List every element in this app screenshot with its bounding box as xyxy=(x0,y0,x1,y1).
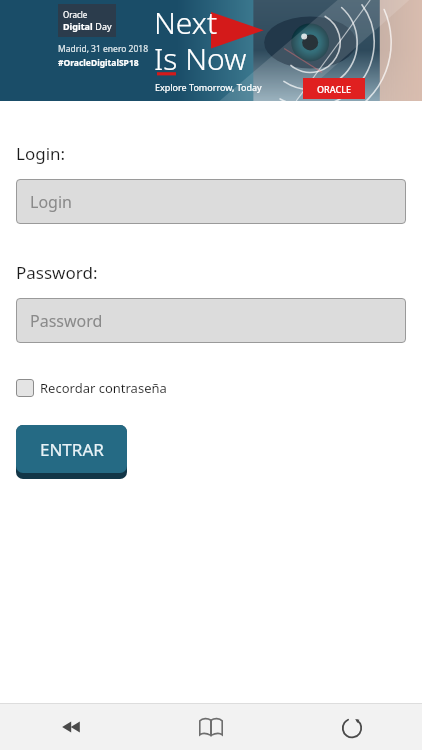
button[interactable]: Login xyxy=(16,179,406,224)
button[interactable]: Recordar contraseña xyxy=(16,379,167,397)
staticText: Next xyxy=(154,2,218,43)
staticText: Login: xyxy=(16,142,66,165)
staticText: ENTRAR xyxy=(40,438,104,461)
staticText: #OracleDigitalSP18 xyxy=(58,57,139,69)
staticText: Password: xyxy=(16,261,98,284)
staticText: ORACLE xyxy=(317,83,351,95)
button[interactable]: Back xyxy=(0,704,141,750)
staticText: Is Now xyxy=(154,38,247,79)
staticText: Password xyxy=(30,310,103,332)
staticText: Explore Tomorrow, Today xyxy=(155,81,262,93)
button[interactable]: Password xyxy=(16,298,406,343)
staticText: Recordar contraseña xyxy=(40,379,167,397)
staticText: Oracle xyxy=(63,9,88,20)
button[interactable]: Bookmarks xyxy=(141,704,281,750)
staticText: Day xyxy=(93,20,112,32)
staticText: Login xyxy=(30,191,72,213)
button[interactable]: Oracle Digital Day banner xyxy=(0,0,422,101)
button[interactable]: Reload xyxy=(281,704,422,750)
staticText: Madrid, 31 enero 2018 xyxy=(58,43,149,55)
button[interactable]: ENTRAR xyxy=(16,425,127,479)
staticText: Digital xyxy=(63,20,93,32)
